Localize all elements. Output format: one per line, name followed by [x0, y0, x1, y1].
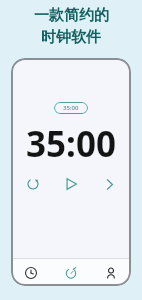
staticText: 时钟软件	[41, 28, 101, 47]
button[interactable]: Timer	[51, 259, 91, 286]
button[interactable]: Next	[99, 174, 119, 194]
staticText: 35:00	[26, 120, 116, 168]
staticText: 35:00	[63, 104, 79, 112]
button[interactable]: Profile	[91, 259, 131, 286]
button[interactable]: Play	[61, 174, 81, 194]
button[interactable]: Reset	[23, 174, 43, 194]
staticText: 一款简约的	[34, 6, 109, 25]
button[interactable]: 35:00	[54, 102, 88, 114]
button[interactable]: Clock	[11, 259, 51, 286]
